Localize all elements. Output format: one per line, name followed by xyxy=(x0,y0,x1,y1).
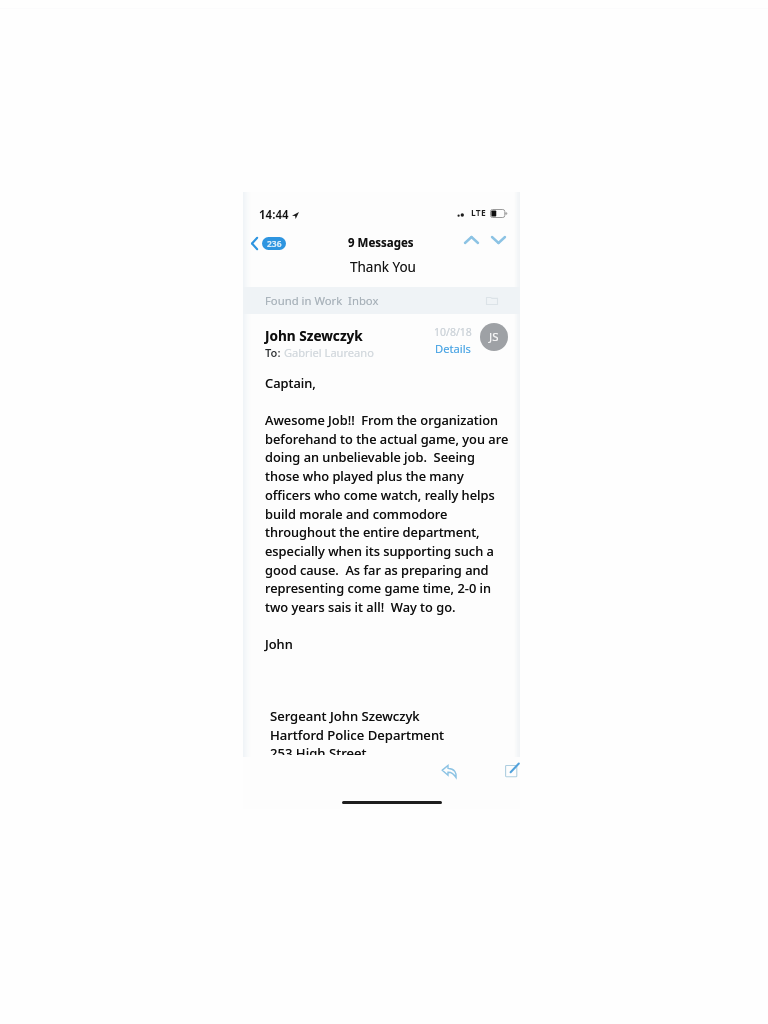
staticText: 9 Messages xyxy=(348,235,414,251)
staticText: Awesome Job!! From the organization xyxy=(265,411,499,429)
staticText: 253 High Street xyxy=(270,744,367,755)
staticText: Hartford Police Department xyxy=(270,726,445,744)
button[interactable]: Previous message xyxy=(460,232,483,248)
staticText: Gabriel Laureano xyxy=(284,345,374,360)
button[interactable]: Found in Work Inbox xyxy=(243,287,520,314)
staticText: Captain, xyxy=(265,374,316,392)
staticText: Hartford Police Department xyxy=(270,726,445,744)
staticText: good cause. As far as preparing and xyxy=(265,561,489,579)
staticText: 253 High Street xyxy=(270,744,367,755)
staticText: two years sais it all! Way to go. xyxy=(265,598,456,616)
staticText: LTE xyxy=(471,207,486,219)
staticText: John Szewczyk xyxy=(265,326,363,345)
staticText: build morale and commodore xyxy=(265,505,448,523)
staticText: John Szewczyk xyxy=(265,326,363,345)
staticText: To: xyxy=(265,345,284,360)
staticText: 236 xyxy=(267,238,282,250)
staticText: especially when its supporting such a xyxy=(265,542,494,560)
staticText: 14:44 xyxy=(259,207,289,223)
staticText: Captain, xyxy=(265,374,316,392)
staticText: Sergeant John Szewczyk xyxy=(270,707,420,725)
staticText: 10/8/18 xyxy=(434,325,472,339)
staticText: doing an unbelievable job. Seeing xyxy=(265,448,475,466)
staticText: throughout the entire department, xyxy=(265,523,480,541)
staticText: those who played plus the many xyxy=(265,467,464,485)
staticText: beforehand to the actual game, you are xyxy=(265,430,509,448)
staticText: beforehand to the actual game, you are xyxy=(265,430,509,448)
button[interactable]: John Szewczyk avatar xyxy=(480,323,508,351)
staticText: officers who come watch, really helps xyxy=(265,486,495,504)
button[interactable]: Compose new message xyxy=(502,760,522,780)
button[interactable]: Reply xyxy=(439,761,460,781)
staticText: Found in Work Inbox xyxy=(265,293,379,308)
staticText: doing an unbelievable job. Seeing xyxy=(265,448,475,466)
staticText: Details xyxy=(435,341,471,356)
staticText: representing come game time, 2-0 in xyxy=(265,579,492,597)
staticText: Thank You xyxy=(350,258,416,276)
staticText: John xyxy=(265,635,293,653)
staticText: two years sais it all! Way to go. xyxy=(265,598,456,616)
staticText: Awesome Job!! From the organization xyxy=(265,411,499,429)
staticText: build morale and commodore xyxy=(265,505,448,523)
staticText: JS xyxy=(489,329,499,345)
staticText: 9 Messages xyxy=(348,235,414,251)
button[interactable]: Next message xyxy=(487,232,510,248)
staticText: John xyxy=(265,635,293,653)
staticText: good cause. As far as preparing and xyxy=(265,561,489,579)
staticText: throughout the entire department, xyxy=(265,523,480,541)
staticText: Thank You xyxy=(350,258,416,276)
button[interactable]: Details xyxy=(435,341,471,356)
button[interactable]: Back to 236 messages xyxy=(247,233,290,254)
staticText: those who played plus the many xyxy=(265,467,464,485)
staticText: Sergeant John Szewczyk xyxy=(270,707,420,725)
staticText: officers who come watch, really helps xyxy=(265,486,495,504)
staticText: representing come game time, 2-0 in xyxy=(265,579,492,597)
staticText: especially when its supporting such a xyxy=(265,542,494,560)
